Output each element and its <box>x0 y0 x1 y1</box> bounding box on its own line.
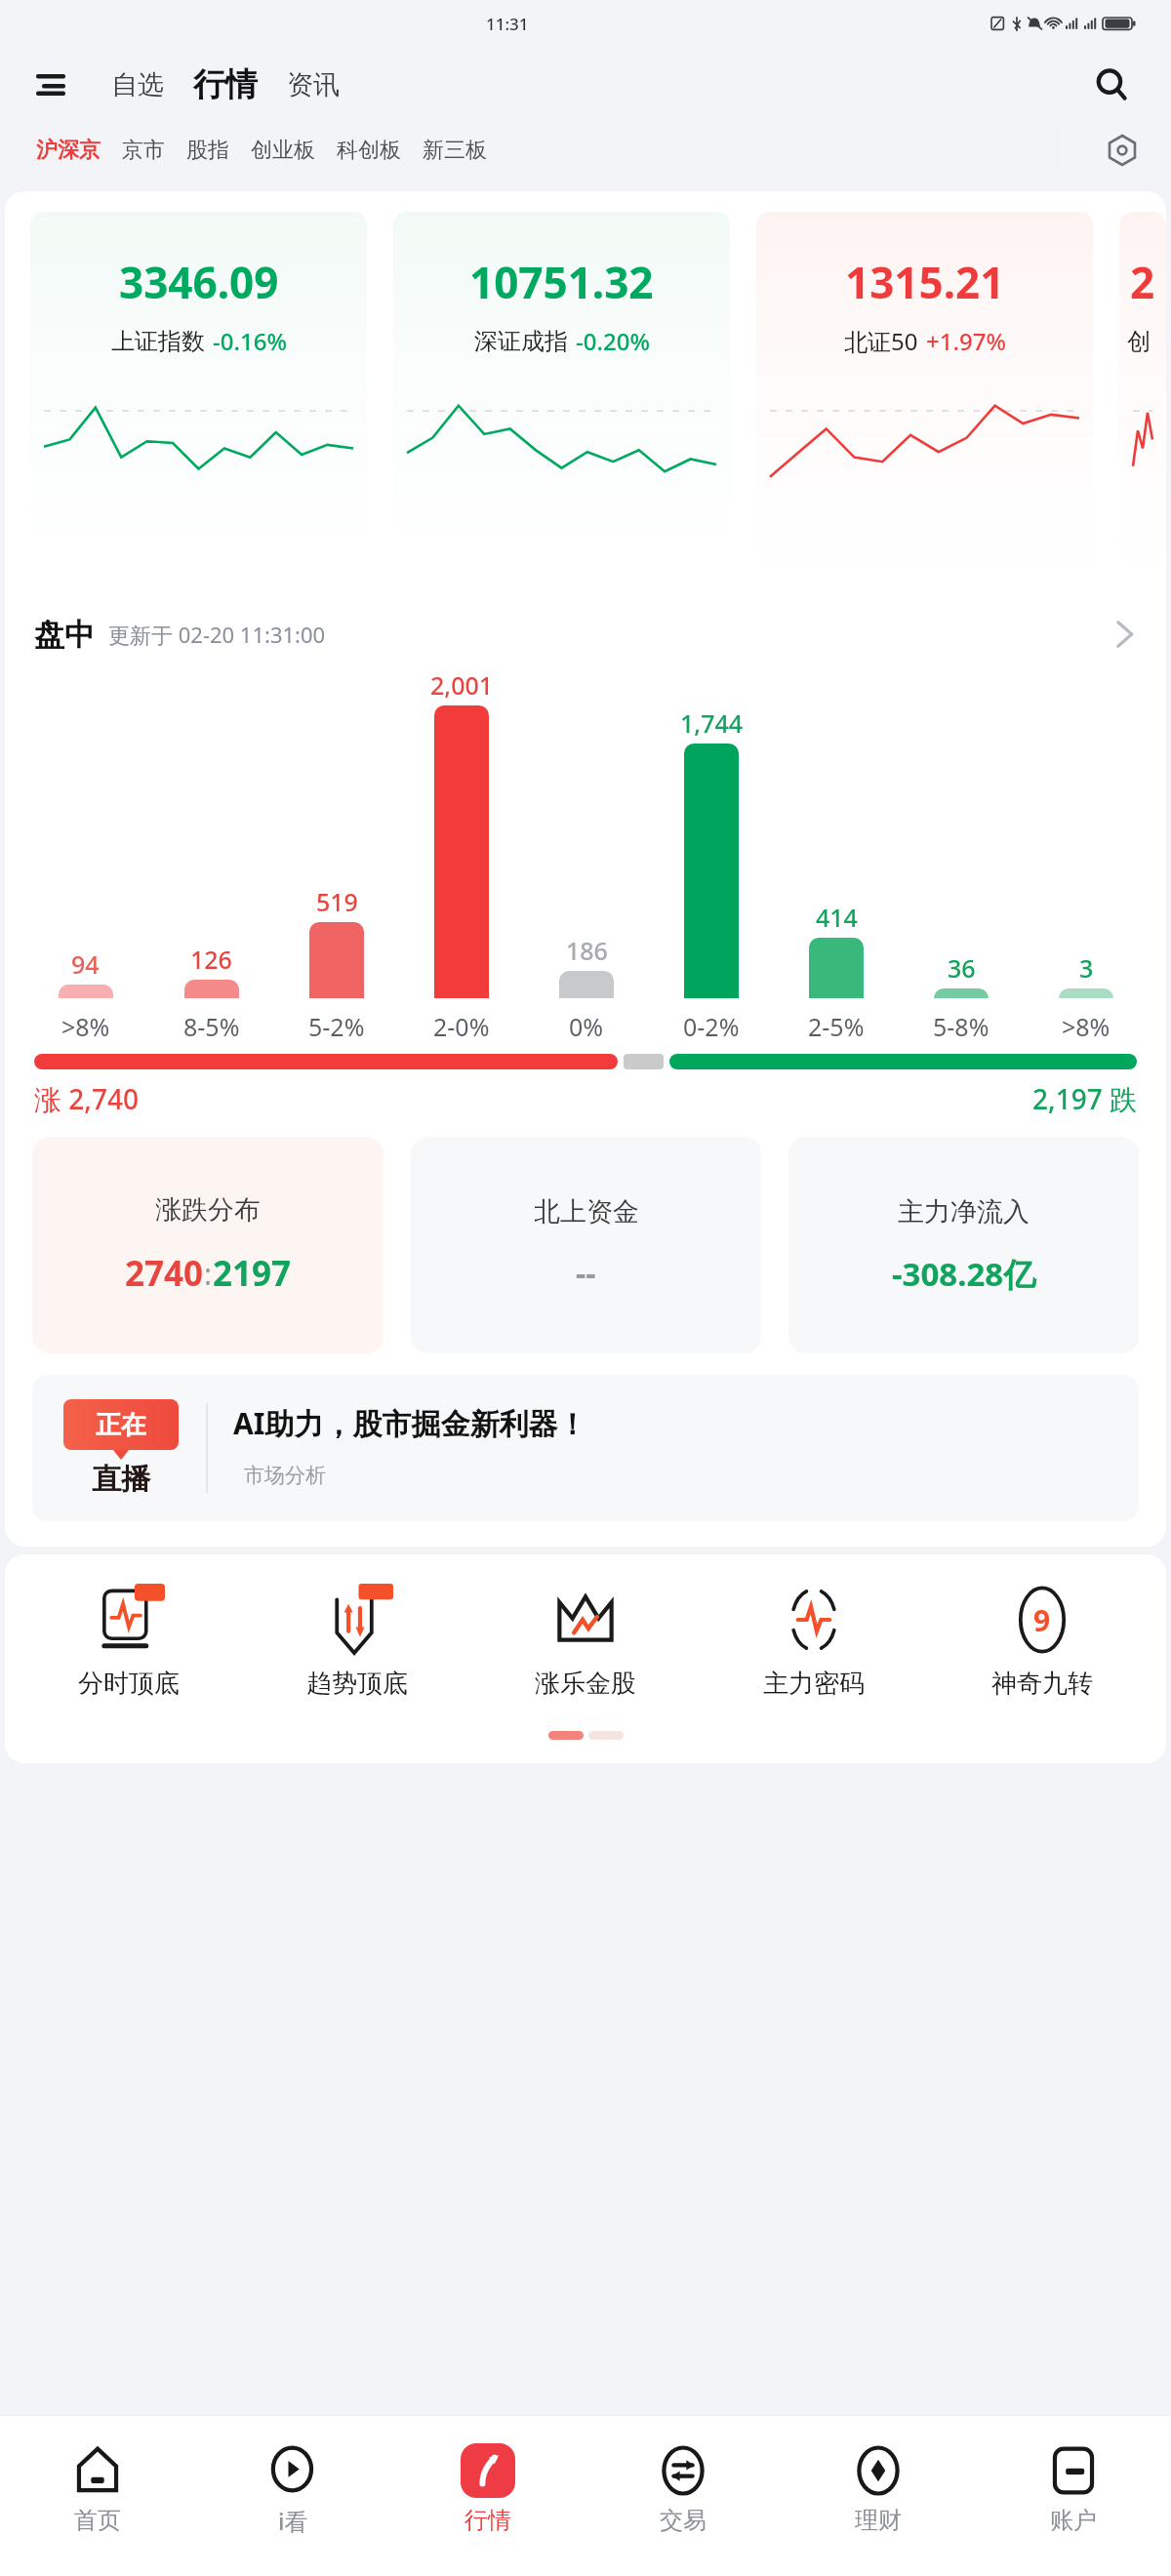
button[interactable]: Menu <box>29 63 72 106</box>
staticText: 9 <box>1033 1600 1051 1640</box>
staticText: 直播 <box>92 1461 150 1498</box>
staticText: 2197 <box>213 1250 292 1297</box>
button[interactable]: 分时顶底 <box>15 1580 243 1704</box>
staticText: 5-8% <box>933 1010 989 1039</box>
staticText: 11:31 <box>486 13 529 35</box>
button[interactable]: 行情 <box>390 2416 585 2562</box>
staticText: 科创板 <box>337 137 401 164</box>
staticText: 涨 2,740 <box>34 1080 139 1117</box>
staticText: i看 <box>278 2505 308 2537</box>
staticText: 10751.32 <box>469 253 654 311</box>
staticText: 资讯 <box>287 68 340 101</box>
staticText: >8% <box>61 1010 110 1039</box>
staticText: 北证50 <box>844 325 918 357</box>
button[interactable]: 涨跌分布 <box>32 1137 384 1353</box>
staticText: 94 <box>71 947 100 981</box>
staticText: 主力密码 <box>763 1668 865 1700</box>
button[interactable]: 资讯 <box>281 68 345 101</box>
staticText: -- <box>576 1252 596 1295</box>
staticText: 2-0% <box>433 1010 490 1039</box>
button[interactable]: 盘中 <box>5 600 1166 668</box>
staticText: 519 <box>316 885 358 918</box>
button[interactable]: 自选 <box>105 68 170 101</box>
staticText: 行情 <box>193 64 258 105</box>
button[interactable]: i看 <box>195 2416 390 2562</box>
staticText: 京市 <box>122 137 165 164</box>
staticText: 1315.21 <box>845 253 1005 311</box>
staticText: 北上资金 <box>534 1195 639 1228</box>
staticText: : <box>204 1254 213 1294</box>
staticText: 主力净流入 <box>898 1195 1030 1228</box>
button[interactable]: 账户 <box>976 2416 1171 2562</box>
staticText: 沪深京 <box>36 137 101 164</box>
staticText: 行情 <box>464 2506 511 2535</box>
staticText: 2,197 跌 <box>1032 1080 1137 1117</box>
button[interactable]: 股指 <box>176 131 240 170</box>
staticText: 186 <box>566 934 608 967</box>
staticText: +1.97% <box>926 325 1006 357</box>
staticText: 涨跌分布 <box>155 1193 261 1227</box>
button[interactable]: 趋势顶底 <box>243 1580 471 1704</box>
staticText: 账户 <box>1050 2506 1097 2535</box>
staticText: 趋势顶底 <box>306 1668 408 1700</box>
button[interactable]: 交易 <box>585 2416 781 2562</box>
staticText: -0.20% <box>576 325 650 357</box>
staticText: 正在 <box>96 1409 146 1441</box>
staticText: 1,744 <box>680 706 744 740</box>
button[interactable]: 京市 <box>111 131 176 170</box>
staticText: AI助力，股市掘金新利器！ <box>233 1403 587 1443</box>
staticText: 8-5% <box>183 1010 240 1039</box>
button[interactable]: 北上资金 <box>411 1137 761 1353</box>
staticText: 36 <box>948 951 976 985</box>
button[interactable]: 正在 <box>32 1375 1139 1521</box>
staticText: 新三板 <box>423 137 487 164</box>
button[interactable]: 主力密码 <box>700 1580 928 1704</box>
button[interactable]: 2 <box>1119 212 1166 579</box>
button[interactable]: 首页 <box>0 2416 195 2562</box>
staticText: 首页 <box>74 2506 121 2535</box>
staticText: 神奇九转 <box>991 1668 1093 1700</box>
staticText: 股指 <box>186 137 229 164</box>
staticText: 0% <box>569 1010 604 1039</box>
button[interactable]: 创业板 <box>240 131 326 170</box>
button[interactable]: 3346.09 <box>30 212 367 579</box>
staticText: 5-2% <box>308 1010 365 1039</box>
staticText: -0.16% <box>213 325 287 357</box>
staticText: 盘中 <box>34 616 95 654</box>
button[interactable]: 沪深京 <box>25 131 111 170</box>
button[interactable]: 涨乐金股 <box>471 1580 700 1704</box>
staticText: 创业板 <box>251 137 315 164</box>
staticText: 更新于 02-20 11:31:00 <box>108 620 326 649</box>
staticText: 交易 <box>660 2506 707 2535</box>
button[interactable]: 行情 <box>187 64 263 105</box>
staticText: 涨乐金股 <box>535 1668 636 1700</box>
button[interactable]: 1315.21 <box>756 212 1093 579</box>
staticText: 自选 <box>111 68 164 101</box>
staticText: 3 <box>1079 951 1094 985</box>
button[interactable]: 理财 <box>781 2416 976 2562</box>
staticText: 分时顶底 <box>78 1668 180 1700</box>
button[interactable]: Search <box>1087 60 1136 109</box>
button[interactable]: 10751.32 <box>393 212 730 579</box>
staticText: 2 <box>1130 253 1155 311</box>
button[interactable]: Settings <box>1097 125 1148 176</box>
staticText: 3346.09 <box>119 253 279 311</box>
button[interactable]: 新三板 <box>412 131 498 170</box>
staticText: 理财 <box>855 2506 902 2535</box>
staticText: 2,001 <box>430 668 494 702</box>
button[interactable]: 9 <box>928 1580 1156 1704</box>
staticText: >8% <box>1062 1010 1110 1039</box>
staticText: 0-2% <box>683 1010 740 1039</box>
button[interactable]: 主力净流入 <box>788 1137 1139 1353</box>
staticText: 414 <box>816 901 858 934</box>
staticText: 2-5% <box>808 1010 865 1039</box>
staticText: 126 <box>190 943 232 976</box>
staticText: 深证成指 <box>474 327 568 356</box>
button[interactable]: 科创板 <box>326 131 412 170</box>
staticText: 上证指数 <box>111 327 205 356</box>
staticText: 2740 <box>125 1250 204 1297</box>
staticText: 创 <box>1127 327 1151 356</box>
staticText: -308.28亿 <box>892 1252 1036 1296</box>
staticText: 市场分析 <box>244 1463 326 1488</box>
